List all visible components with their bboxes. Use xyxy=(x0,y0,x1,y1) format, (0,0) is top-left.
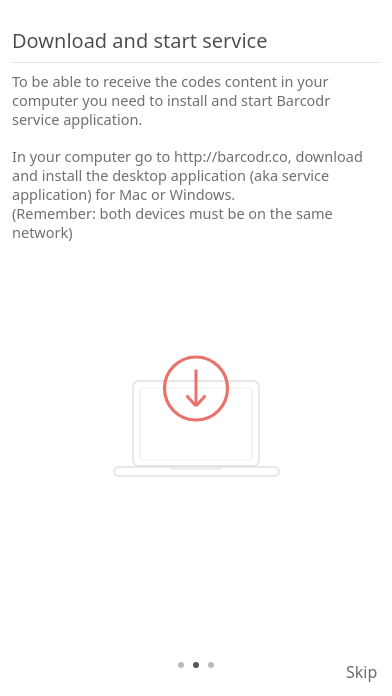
staticText: Skip xyxy=(346,661,378,683)
button[interactable]: Skip xyxy=(336,653,388,691)
staticText: In your computer go to http://barcodr.co… xyxy=(12,146,382,242)
staticText: To be able to receive the codes content … xyxy=(12,71,376,129)
other: Download to computer illustration xyxy=(0,345,392,495)
staticText: Download and start service xyxy=(12,27,268,54)
